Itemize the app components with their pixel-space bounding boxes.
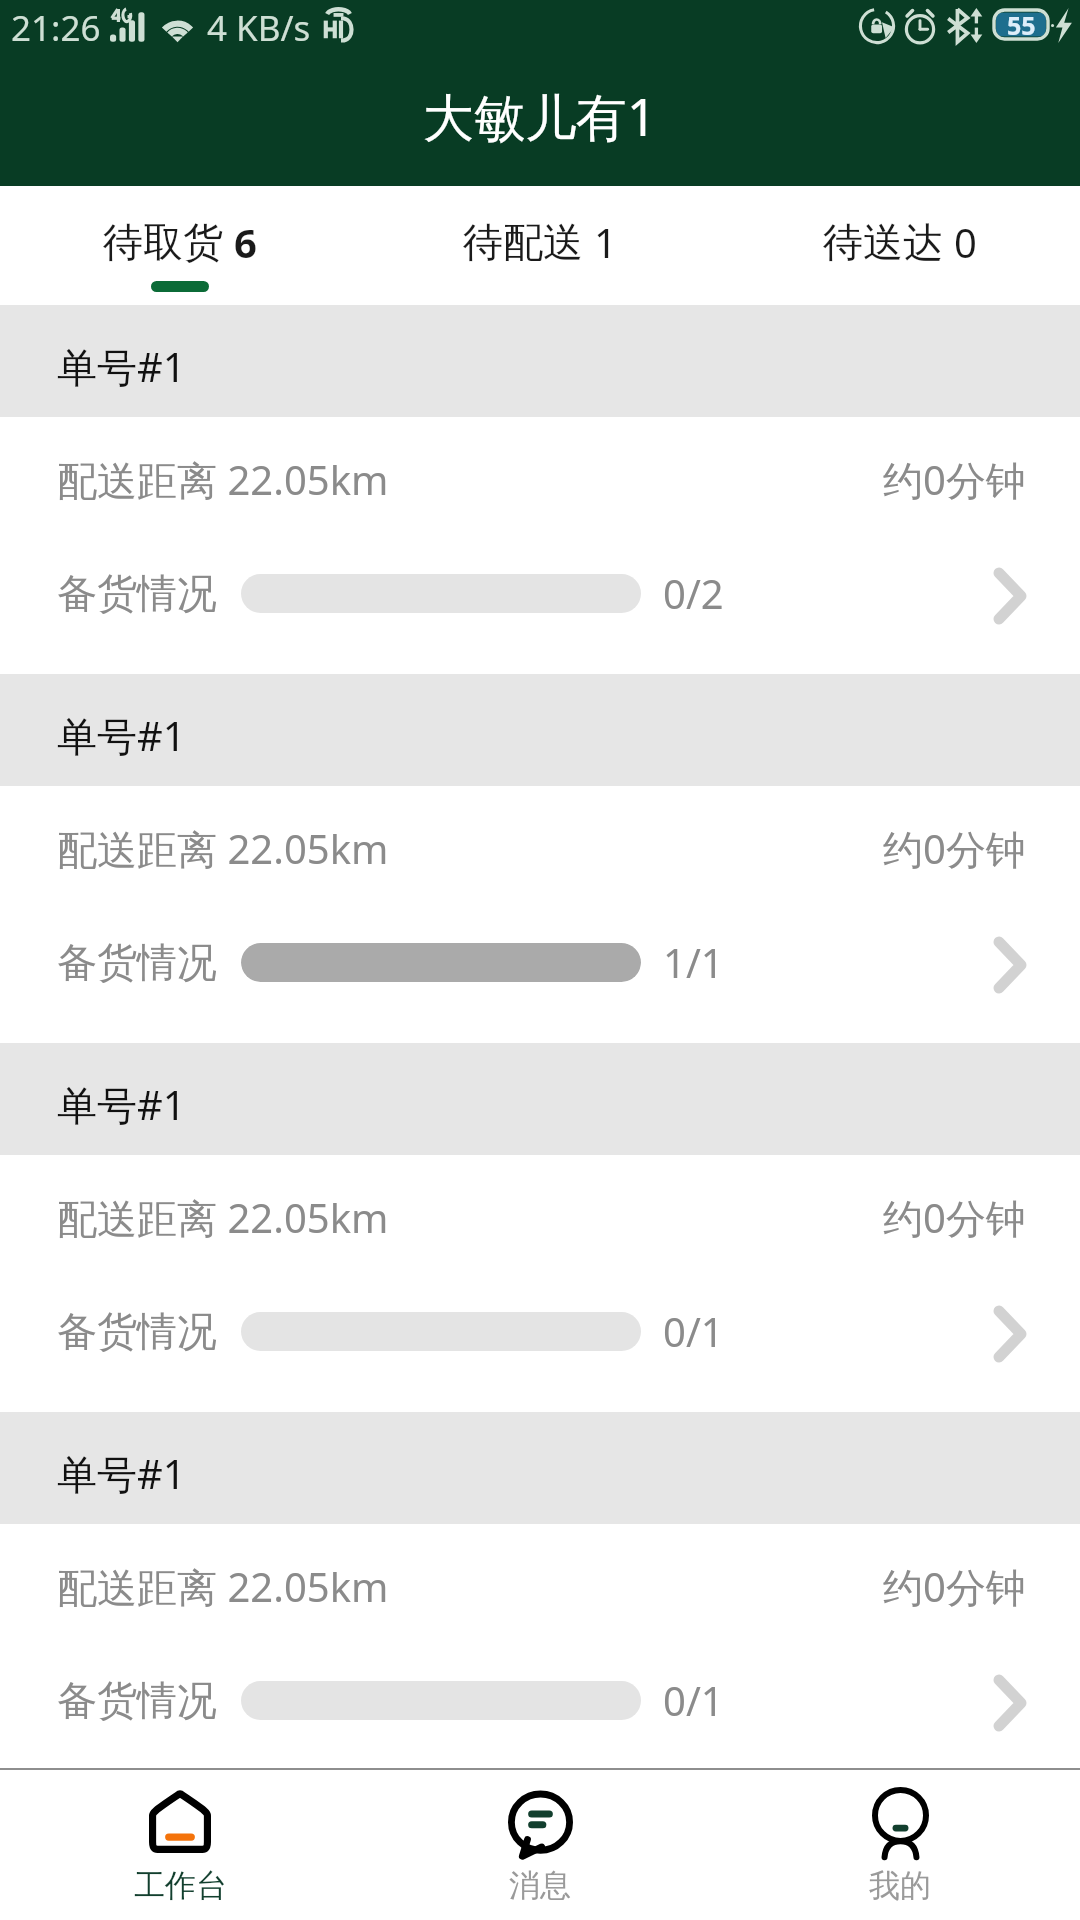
- button[interactable]: 单号#1: [0, 1412, 1080, 1768]
- staticText: 待配送: [463, 217, 583, 267]
- button[interactable]: 待送达: [720, 186, 1080, 305]
- staticText: 备货情况: [57, 568, 217, 618]
- staticText: 单号#1: [57, 1077, 186, 1132]
- staticText: 配送距离 22.05km: [57, 452, 389, 507]
- staticText: 约0分钟: [883, 1190, 1026, 1245]
- staticText: 1/1: [663, 935, 724, 989]
- staticText: 单号#1: [57, 708, 186, 763]
- staticText: 我的: [869, 1866, 931, 1905]
- staticText: 备货情况: [57, 1306, 217, 1356]
- staticText: 单号#1: [57, 1446, 186, 1501]
- staticText: 4 KB/s: [207, 4, 311, 52]
- staticText: 备货情况: [57, 1675, 217, 1725]
- button[interactable]: 单号#1: [0, 674, 1080, 1043]
- staticText: 单号#1: [57, 339, 186, 394]
- staticText: 配送距离 22.05km: [57, 1559, 389, 1614]
- staticText: 消息: [509, 1866, 571, 1905]
- button[interactable]: Workbench: [0, 1770, 360, 1920]
- staticText: 待取货: [103, 217, 223, 267]
- staticText: 待送达: [823, 217, 943, 267]
- staticText: 21:26: [11, 4, 101, 52]
- staticText: 0/1: [663, 1673, 724, 1727]
- staticText: 55: [1007, 8, 1036, 41]
- staticText: 约0分钟: [883, 452, 1026, 507]
- staticText: 0: [954, 215, 977, 269]
- staticText: 1: [594, 215, 617, 269]
- button[interactable]: 待取货: [0, 186, 360, 305]
- button[interactable]: Messages: [360, 1770, 720, 1920]
- staticText: 0/2: [663, 566, 724, 620]
- staticText: 配送距离 22.05km: [57, 821, 389, 876]
- staticText: 6: [234, 215, 257, 269]
- staticText: 配送距离 22.05km: [57, 1190, 389, 1245]
- staticText: 工作台: [134, 1866, 227, 1905]
- staticText: 大敏儿有1: [423, 81, 657, 151]
- staticText: 0/1: [663, 1304, 724, 1358]
- staticText: 约0分钟: [883, 821, 1026, 876]
- staticText: 备货情况: [57, 937, 217, 987]
- button[interactable]: 待配送: [360, 186, 720, 305]
- button[interactable]: 单号#1: [0, 1043, 1080, 1412]
- button[interactable]: 单号#1: [0, 305, 1080, 674]
- button[interactable]: Profile: [720, 1770, 1080, 1920]
- staticText: 约0分钟: [883, 1559, 1026, 1614]
